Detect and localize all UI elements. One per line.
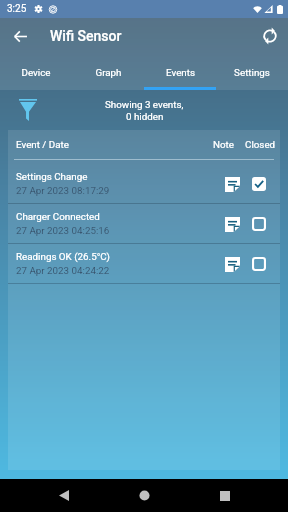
button[interactable]: Closed [246,251,272,277]
staticText: 27 Apr 2023 04:24:22 [16,265,110,276]
staticText: Graph [95,67,122,78]
button[interactable]: Note [219,251,245,277]
staticText: Event / Date [16,139,69,150]
button[interactable]: Home [127,479,161,512]
button[interactable]: Back [47,479,81,512]
button[interactable]: Recents [208,479,242,512]
button[interactable]: Readings OK (26.5°C) [8,244,280,283]
staticText: Wifi Sensor [50,28,122,44]
staticText: 27 Apr 2023 04:25:16 [16,225,110,236]
button[interactable]: Settings [216,54,288,90]
button[interactable]: Graph [72,54,144,90]
staticText: Closed [245,139,276,150]
staticText: Showing 3 events, [105,99,184,110]
staticText: 3:25 [7,3,27,15]
staticText: Settings [234,67,270,78]
button[interactable]: Filter [11,93,45,127]
button[interactable]: Events [144,54,216,90]
staticText: Charger Connected [16,211,100,222]
button[interactable]: Note [219,171,245,197]
button[interactable]: Closed [246,171,272,197]
button[interactable]: Note [219,211,245,237]
staticText: Device [21,67,51,78]
staticText: 27 Apr 2023 08:17:29 [16,185,110,196]
button[interactable]: Closed [246,211,272,237]
button[interactable]: Refresh [252,18,288,54]
button[interactable]: Device [0,54,72,90]
staticText: 0 hidden [126,111,164,122]
staticText: Readings OK (26.5°C) [16,251,110,262]
staticText: Note [213,139,234,150]
button[interactable]: Settings Change [8,164,280,203]
staticText: Settings Change [16,171,88,182]
button[interactable]: Back [2,18,38,54]
staticText: Events [166,67,195,78]
button[interactable]: Charger Connected [8,204,280,243]
